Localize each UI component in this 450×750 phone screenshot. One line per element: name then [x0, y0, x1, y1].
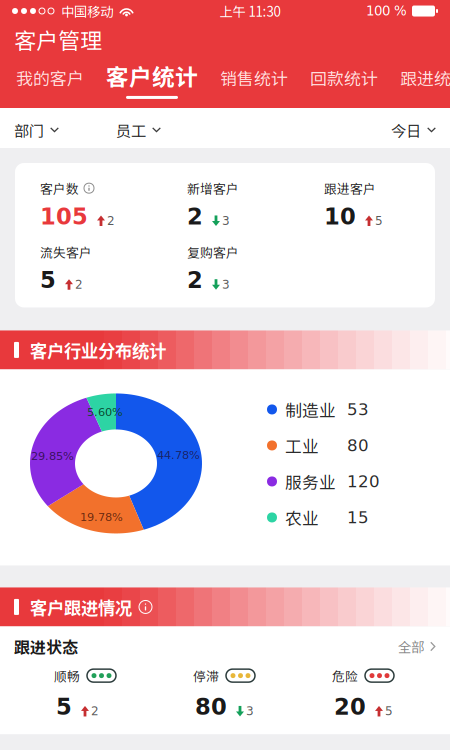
button[interactable]: 全部 [398, 625, 436, 668]
button[interactable]: 回款统计 [299, 62, 389, 103]
staticText: 5 [56, 694, 72, 720]
staticText: 44.78% [157, 448, 200, 462]
staticText: 客户数 [40, 179, 79, 197]
staticText: 120 [347, 472, 380, 491]
staticText: 服务业 [285, 469, 336, 493]
staticText: 2 [75, 277, 83, 291]
staticText: 上午 11:30 [219, 1, 280, 21]
staticText: 29.85% [31, 449, 74, 463]
staticText: 100 % [366, 3, 407, 19]
staticText: 农业 [285, 505, 319, 529]
staticText: 5.60% [87, 405, 123, 419]
staticText: 我的客户 [16, 65, 84, 90]
staticText: 15 [347, 508, 369, 527]
button[interactable]: 我的客户 [5, 62, 95, 103]
staticText: 5 [375, 214, 383, 228]
staticText: 部门 [14, 119, 44, 141]
button[interactable]: 销售统计 [209, 62, 299, 103]
staticText: 制造业 [285, 397, 336, 421]
staticText: 80 [195, 694, 227, 720]
staticText: 跟进客户 [324, 179, 376, 197]
staticText: 5 [385, 704, 393, 718]
staticText: 2 [187, 267, 203, 293]
staticText: 跟进统计 [400, 65, 450, 90]
staticText: 3 [222, 277, 230, 291]
button[interactable]: 员工 [116, 108, 161, 152]
staticText: 2 [91, 704, 99, 718]
staticText: 中国移动 [61, 1, 113, 21]
staticText: 工业 [285, 433, 319, 457]
staticText: 客户行业分布统计 [30, 337, 166, 362]
staticText: 今日 [391, 119, 421, 141]
staticText: 3 [222, 214, 230, 228]
staticText: 流失客户 [40, 243, 92, 261]
staticText: 53 [347, 400, 369, 419]
staticText: 客户统计 [106, 59, 198, 92]
staticText: 5 [40, 267, 56, 293]
staticText: 10 [324, 203, 356, 230]
staticText: 客户管理 [14, 24, 102, 55]
button[interactable]: 部门 [14, 108, 59, 152]
staticText: 顺畅 [54, 666, 80, 685]
staticText: 回款统计 [310, 65, 378, 90]
staticText: 危险 [332, 666, 358, 685]
button[interactable]: 客户统计 [95, 62, 209, 103]
staticText: 停滞 [193, 666, 219, 685]
staticText: 跟进状态 [14, 635, 78, 658]
staticText: 105 [40, 203, 88, 230]
button[interactable]: 跟进统计 [389, 62, 450, 103]
staticText: 新增客户 [187, 179, 239, 197]
staticText: 80 [347, 436, 369, 455]
staticText: 20 [334, 694, 366, 720]
staticText: 全部 [398, 637, 424, 656]
staticText: 销售统计 [220, 65, 288, 90]
staticText: 客户跟进情况 [30, 594, 132, 619]
staticText: 员工 [116, 119, 146, 141]
staticText: 19.78% [80, 510, 123, 524]
staticText: 3 [246, 704, 254, 718]
staticText: 复购客户 [187, 243, 239, 261]
staticText: 2 [107, 214, 115, 228]
button[interactable]: 今日 [391, 108, 436, 152]
staticText: 2 [187, 203, 203, 230]
